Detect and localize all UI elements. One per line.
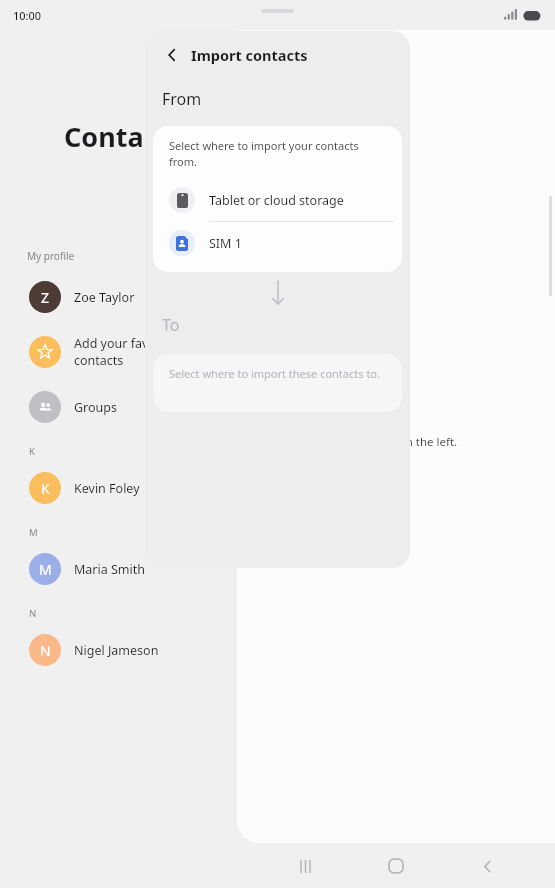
button[interactable]: Recents: [284, 844, 328, 888]
staticText: Maria Smith: [74, 561, 146, 578]
staticText: My profile: [27, 249, 75, 263]
button[interactable]: Select where to import these contacts to…: [153, 354, 402, 412]
staticText: From: [162, 88, 202, 110]
staticText: Select where to import your contacts fro…: [169, 138, 380, 169]
staticText: To: [162, 314, 180, 336]
staticText: N: [29, 607, 37, 620]
staticText: 10:00: [13, 8, 42, 23]
button[interactable]: Back: [465, 844, 509, 888]
staticText: M: [29, 526, 38, 539]
button[interactable]: Add your favourite contacts: [0, 321, 237, 383]
staticText: Import contacts: [191, 45, 308, 65]
staticText: K: [41, 479, 50, 498]
staticText: Groups: [74, 399, 117, 416]
button[interactable]: SIM 1: [153, 222, 402, 264]
button[interactable]: Groups: [0, 383, 237, 431]
staticText: Select a contact from the list on the le…: [243, 434, 458, 450]
staticText: Z: [41, 288, 50, 307]
button[interactable]: M: [0, 545, 237, 593]
staticText: Nigel Jameson: [74, 642, 159, 659]
staticText: M: [39, 560, 52, 579]
button[interactable]: K: [0, 464, 237, 512]
staticText: SIM 1: [209, 235, 242, 252]
staticText: Zoe Taylor: [74, 289, 135, 306]
staticText: Add your favourite contacts: [74, 335, 184, 369]
button[interactable]: Home: [374, 844, 418, 888]
staticText: Tablet or cloud storage: [209, 192, 344, 209]
button[interactable]: Back: [159, 42, 185, 68]
staticText: Contacts: [64, 118, 183, 155]
button[interactable]: Z: [0, 273, 237, 321]
button[interactable]: Tablet or cloud storage: [153, 179, 402, 222]
staticText: Select where to import these contacts to…: [169, 366, 380, 381]
staticText: Kevin Foley: [74, 480, 140, 497]
button[interactable]: N: [0, 626, 237, 674]
staticText: N: [40, 641, 51, 660]
staticText: K: [29, 445, 35, 458]
